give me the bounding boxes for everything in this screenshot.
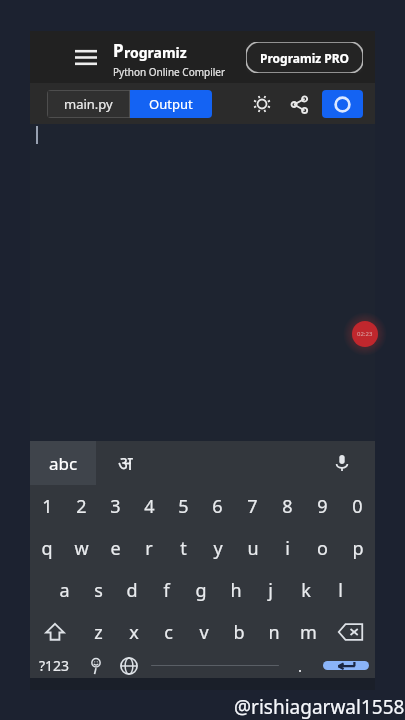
staticText: o [317,536,328,561]
staticText: P [113,39,124,62]
button[interactable]: ?123 [30,653,79,678]
button[interactable]: 8 [270,485,305,527]
button[interactable]: r [132,527,166,569]
button[interactable]: o [305,527,340,569]
staticText: 4 [144,494,155,519]
staticText: 0 [352,494,363,519]
staticText: 6 [212,494,223,519]
staticText: e [110,536,121,561]
staticText: c [164,620,173,645]
button[interactable]: x [116,611,151,653]
button[interactable]: abc [30,441,96,485]
staticText: 1 [42,494,53,519]
button[interactable]: n [256,611,291,653]
button[interactable]: main.py [47,90,130,118]
button[interactable]: z [80,611,116,653]
staticText: m [300,620,317,645]
button[interactable]: 5 [166,485,200,527]
button[interactable]: v [186,611,221,653]
staticText: y [213,536,223,561]
button[interactable]: m [291,611,326,653]
staticText: t [180,536,187,561]
button[interactable]: k [288,569,323,611]
staticText: j [268,578,273,603]
button[interactable]: Emoji [79,653,112,678]
staticText: Python Online Compiler [113,65,226,79]
staticText: 7 [247,494,258,519]
staticText: f [163,578,170,603]
staticText: h [230,578,242,603]
staticText: 5 [178,494,189,519]
button[interactable]: j [253,569,288,611]
button[interactable]: Menu [68,31,104,83]
button[interactable]: u [235,527,270,569]
staticText: s [94,578,103,603]
button[interactable]: l [323,569,358,611]
staticText: Output [149,95,193,113]
button[interactable]: i [270,527,305,569]
staticText: 2 [76,494,87,519]
button[interactable]: b [221,611,256,653]
staticText: main.py [64,95,113,113]
staticText: w [74,536,89,561]
staticText: 8 [282,494,293,519]
button[interactable]: a [47,569,81,611]
staticText: q [41,536,53,561]
staticText: 9 [317,494,328,519]
button[interactable]: 2 [64,485,98,527]
staticText: g [195,578,207,603]
button[interactable]: Theme [248,90,276,118]
staticText: 3 [110,494,121,519]
button[interactable]: Run [322,90,363,118]
staticText: i [285,536,290,561]
button[interactable]: 0 [340,485,375,527]
staticText: z [94,620,103,645]
staticText: ?123 [39,656,70,675]
button[interactable]: w [64,527,98,569]
staticText: abc [49,452,78,475]
staticText: r [145,536,153,561]
button[interactable]: y [200,527,235,569]
staticText: अ [118,450,133,476]
button[interactable]: 6 [200,485,235,527]
button[interactable]: अ [118,450,133,476]
staticText: d [126,578,138,603]
button[interactable]: t [166,527,200,569]
button[interactable]: d [115,569,149,611]
staticText: u [247,536,259,561]
button[interactable]: e [98,527,132,569]
staticText: k [301,578,311,603]
staticText: Programiz PRO [260,50,350,66]
staticText: b [233,620,245,645]
button[interactable]: Share [285,90,313,118]
button[interactable]: g [183,569,218,611]
staticText: l [338,578,343,603]
staticText: @rishiagarwal1558 [234,694,405,720]
button[interactable]: Output [130,90,212,118]
staticText: v [199,620,209,645]
button[interactable]: q [30,527,64,569]
button[interactable]: Voice input [325,446,359,480]
button[interactable]: 3 [98,485,132,527]
staticText: n [268,620,280,645]
staticText: . [298,656,303,676]
staticText: rogramiz [124,43,187,62]
staticText: a [59,578,70,603]
button[interactable]: Backspace [326,611,375,653]
button[interactable]: 1 [30,485,64,527]
button[interactable]: 7 [235,485,270,527]
button[interactable]: Programiz PRO [246,42,363,73]
button[interactable]: Change language [112,653,146,678]
button[interactable]: s [81,569,115,611]
button[interactable]: p [340,527,375,569]
button[interactable]: 9 [305,485,340,527]
button[interactable]: f [149,569,183,611]
button[interactable]: Enter [323,661,369,670]
button[interactable]: Shift [30,611,80,653]
button[interactable]: 4 [132,485,166,527]
button[interactable]: h [218,569,253,611]
button[interactable]: c [151,611,186,653]
staticText: x [129,620,139,645]
button[interactable]: . [284,653,317,678]
